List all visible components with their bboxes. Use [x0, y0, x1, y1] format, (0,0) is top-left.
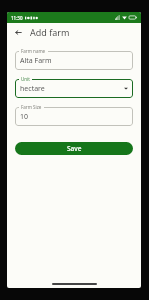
- staticText: Farm Size: [21, 104, 42, 110]
- button[interactable]: Back: [12, 26, 25, 39]
- button[interactable]: Alta Farm: [15, 51, 133, 70]
- button[interactable]: 10: [15, 107, 133, 126]
- staticText: hectare: [20, 84, 45, 94]
- staticText: 11:30: [11, 15, 23, 21]
- staticText: 10: [20, 112, 29, 122]
- staticText: Unit: [21, 76, 30, 82]
- button[interactable]: hectare: [15, 79, 133, 98]
- button[interactable]: Save: [15, 142, 133, 155]
- staticText: Alta Farm: [20, 56, 52, 66]
- staticText: Farm name: [21, 48, 46, 54]
- staticText: Save: [67, 144, 82, 153]
- staticText: Add farm: [30, 26, 70, 38]
